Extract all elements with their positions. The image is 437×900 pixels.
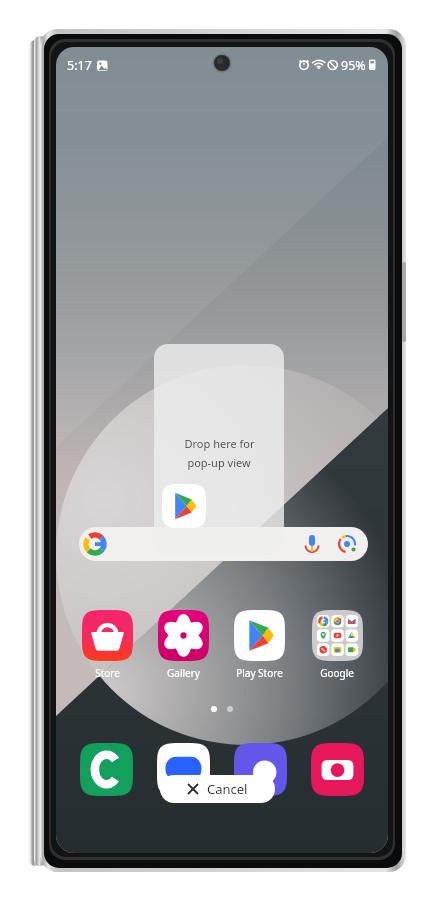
button[interactable]: Phone bbox=[80, 743, 133, 796]
button[interactable]: Drop here for bbox=[154, 344, 284, 556]
button[interactable]: Cancel bbox=[160, 775, 275, 803]
button[interactable]: Play Store bbox=[223, 605, 295, 683]
button[interactable]: Google bbox=[301, 605, 373, 683]
staticText: Google bbox=[320, 666, 354, 680]
button[interactable]: Camera bbox=[311, 743, 364, 796]
button[interactable]: Messages bbox=[157, 743, 210, 796]
button[interactable]: Store bbox=[71, 605, 143, 683]
staticText: Gallery bbox=[167, 666, 200, 680]
staticText: 5:17 bbox=[67, 57, 92, 74]
staticText: Drop here for bbox=[184, 436, 255, 451]
staticText: pop-up view bbox=[187, 455, 251, 470]
staticText: 95% bbox=[341, 57, 366, 74]
staticText: Cancel bbox=[207, 780, 248, 798]
button[interactable] bbox=[79, 527, 368, 561]
button[interactable]: Gallery bbox=[147, 605, 219, 683]
staticText: Store bbox=[95, 666, 120, 680]
staticText: Play Store bbox=[236, 666, 283, 680]
button[interactable]: Internet bbox=[234, 743, 287, 796]
